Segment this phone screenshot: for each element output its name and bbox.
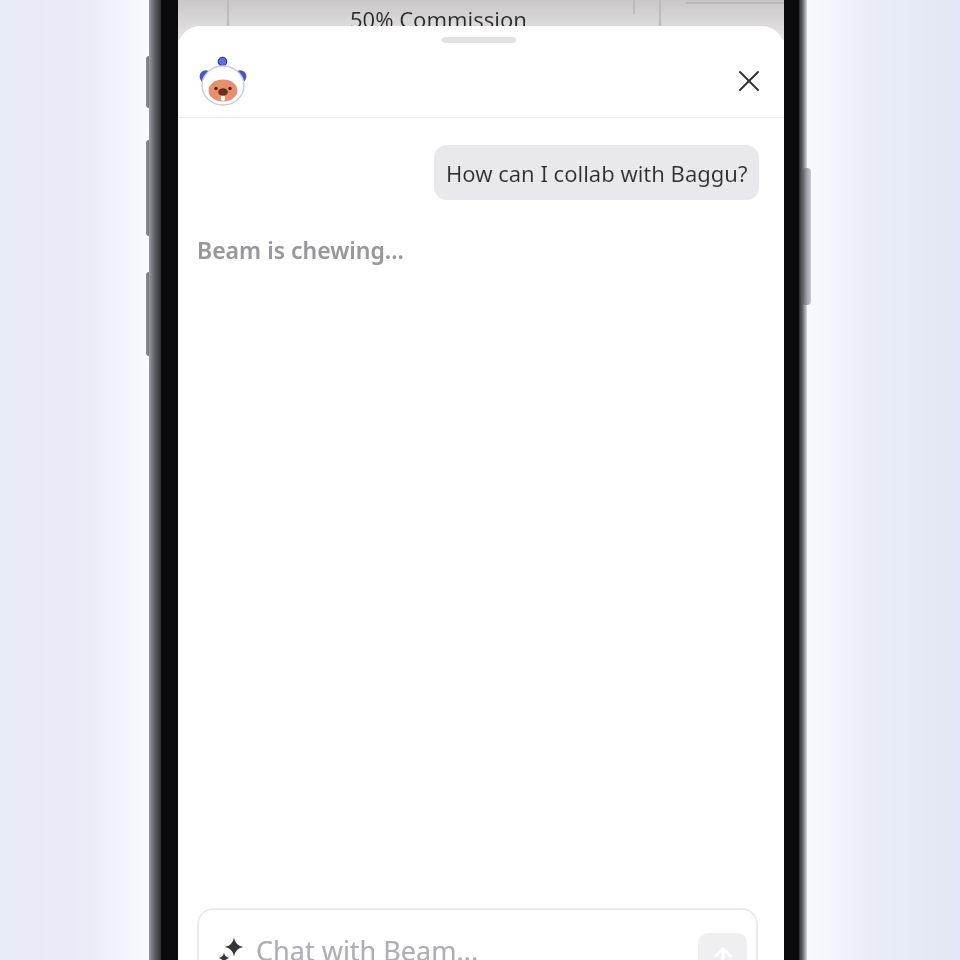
button[interactable]: Chat with Beam...: [197, 908, 758, 960]
staticText: 50% Commission: [350, 4, 527, 34]
button[interactable]: [727, 59, 771, 103]
staticText: How can I collab with Baggu?: [446, 158, 748, 188]
staticText: Chat with Beam...: [256, 932, 479, 960]
button[interactable]: [698, 933, 747, 960]
staticText: Beam is chewing...: [197, 234, 404, 265]
